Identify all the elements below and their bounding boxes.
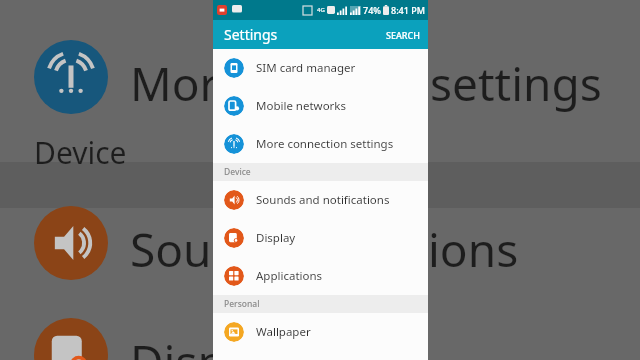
staticText: Display [256,230,296,246]
button[interactable]: Sounds and notifications [213,181,428,219]
button[interactable]: Wallpaper [213,313,428,351]
staticText: Applications [256,268,323,284]
staticText: More [130,52,244,115]
staticText: Personal [224,298,260,310]
staticText: Sound [130,218,269,281]
button[interactable]: Applications [213,257,428,295]
staticText: 8:41 PM [391,4,425,16]
staticText: Sounds and notifications [256,192,390,208]
staticText: Device [34,132,127,173]
button[interactable]: SIM card manager [213,49,428,87]
staticText: settings [430,52,602,115]
staticText: ions [428,218,519,281]
staticText: Device [224,166,251,178]
button[interactable]: Display [213,219,428,257]
staticText: More connection settings [256,136,394,152]
button[interactable]: More connection settings [213,125,428,163]
staticText: Mobile networks [256,98,347,114]
staticText: Wallpaper [256,324,311,340]
staticText: SIM card manager [256,60,356,76]
staticText: Displa [130,330,264,360]
staticText: 74% [363,4,381,16]
button[interactable]: SEARCH [378,22,428,48]
staticText: SEARCH [386,29,420,41]
button[interactable]: Mobile networks [213,87,428,125]
staticText: 4G [317,6,325,14]
staticText: Settings [224,25,278,44]
